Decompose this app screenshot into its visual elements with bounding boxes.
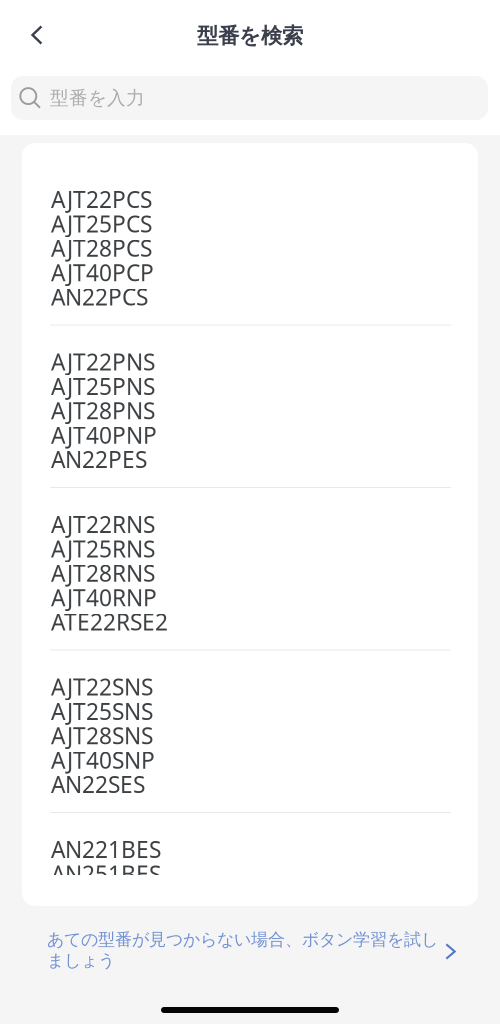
staticText: AJT22PCS (51, 184, 152, 214)
staticText: AN281BES (51, 883, 161, 913)
staticText: 型番を検索 (197, 23, 303, 49)
staticText: AN22SES (51, 769, 145, 799)
staticText: AN22PCS (51, 282, 148, 312)
staticText: あての型番が見つからない場合、ボタン学習を試し (47, 929, 438, 950)
staticText: AN251BES (51, 858, 161, 889)
staticText: ましょう (47, 950, 115, 971)
staticText: AJT25PCS (51, 208, 152, 239)
staticText: AN221BES (51, 834, 161, 864)
staticText: AJT40RNP (51, 582, 157, 612)
staticText: AJT22PNS (51, 347, 155, 377)
staticText: AJT40PCP (51, 257, 154, 287)
staticText: AJT28SNS (51, 720, 153, 750)
button[interactable]: あての型番が見つからない場合、ボタン学習を試し (0, 906, 500, 984)
button[interactable]: Back (10, 9, 64, 61)
staticText: AJT25SNS (51, 696, 153, 726)
staticText: AJT25PNS (51, 371, 155, 401)
staticText: AN22BES (51, 932, 148, 962)
staticText: AJT22SNS (51, 672, 153, 702)
staticText: AN401BEP (51, 907, 163, 937)
staticText: AJT22RNS (51, 509, 155, 539)
staticText: AJT28RNS (51, 558, 155, 588)
staticText: AJT40PNP (51, 420, 157, 450)
staticText: 型番を入力 (50, 86, 145, 109)
staticText: AJT28PCS (51, 233, 152, 263)
staticText: ATE22RSE2 (51, 607, 168, 637)
staticText: AN22PES (51, 444, 147, 474)
staticText: AJT25RNS (51, 533, 155, 564)
staticText: AJT40SNP (51, 745, 155, 775)
staticText: AJT28PNS (51, 395, 155, 425)
